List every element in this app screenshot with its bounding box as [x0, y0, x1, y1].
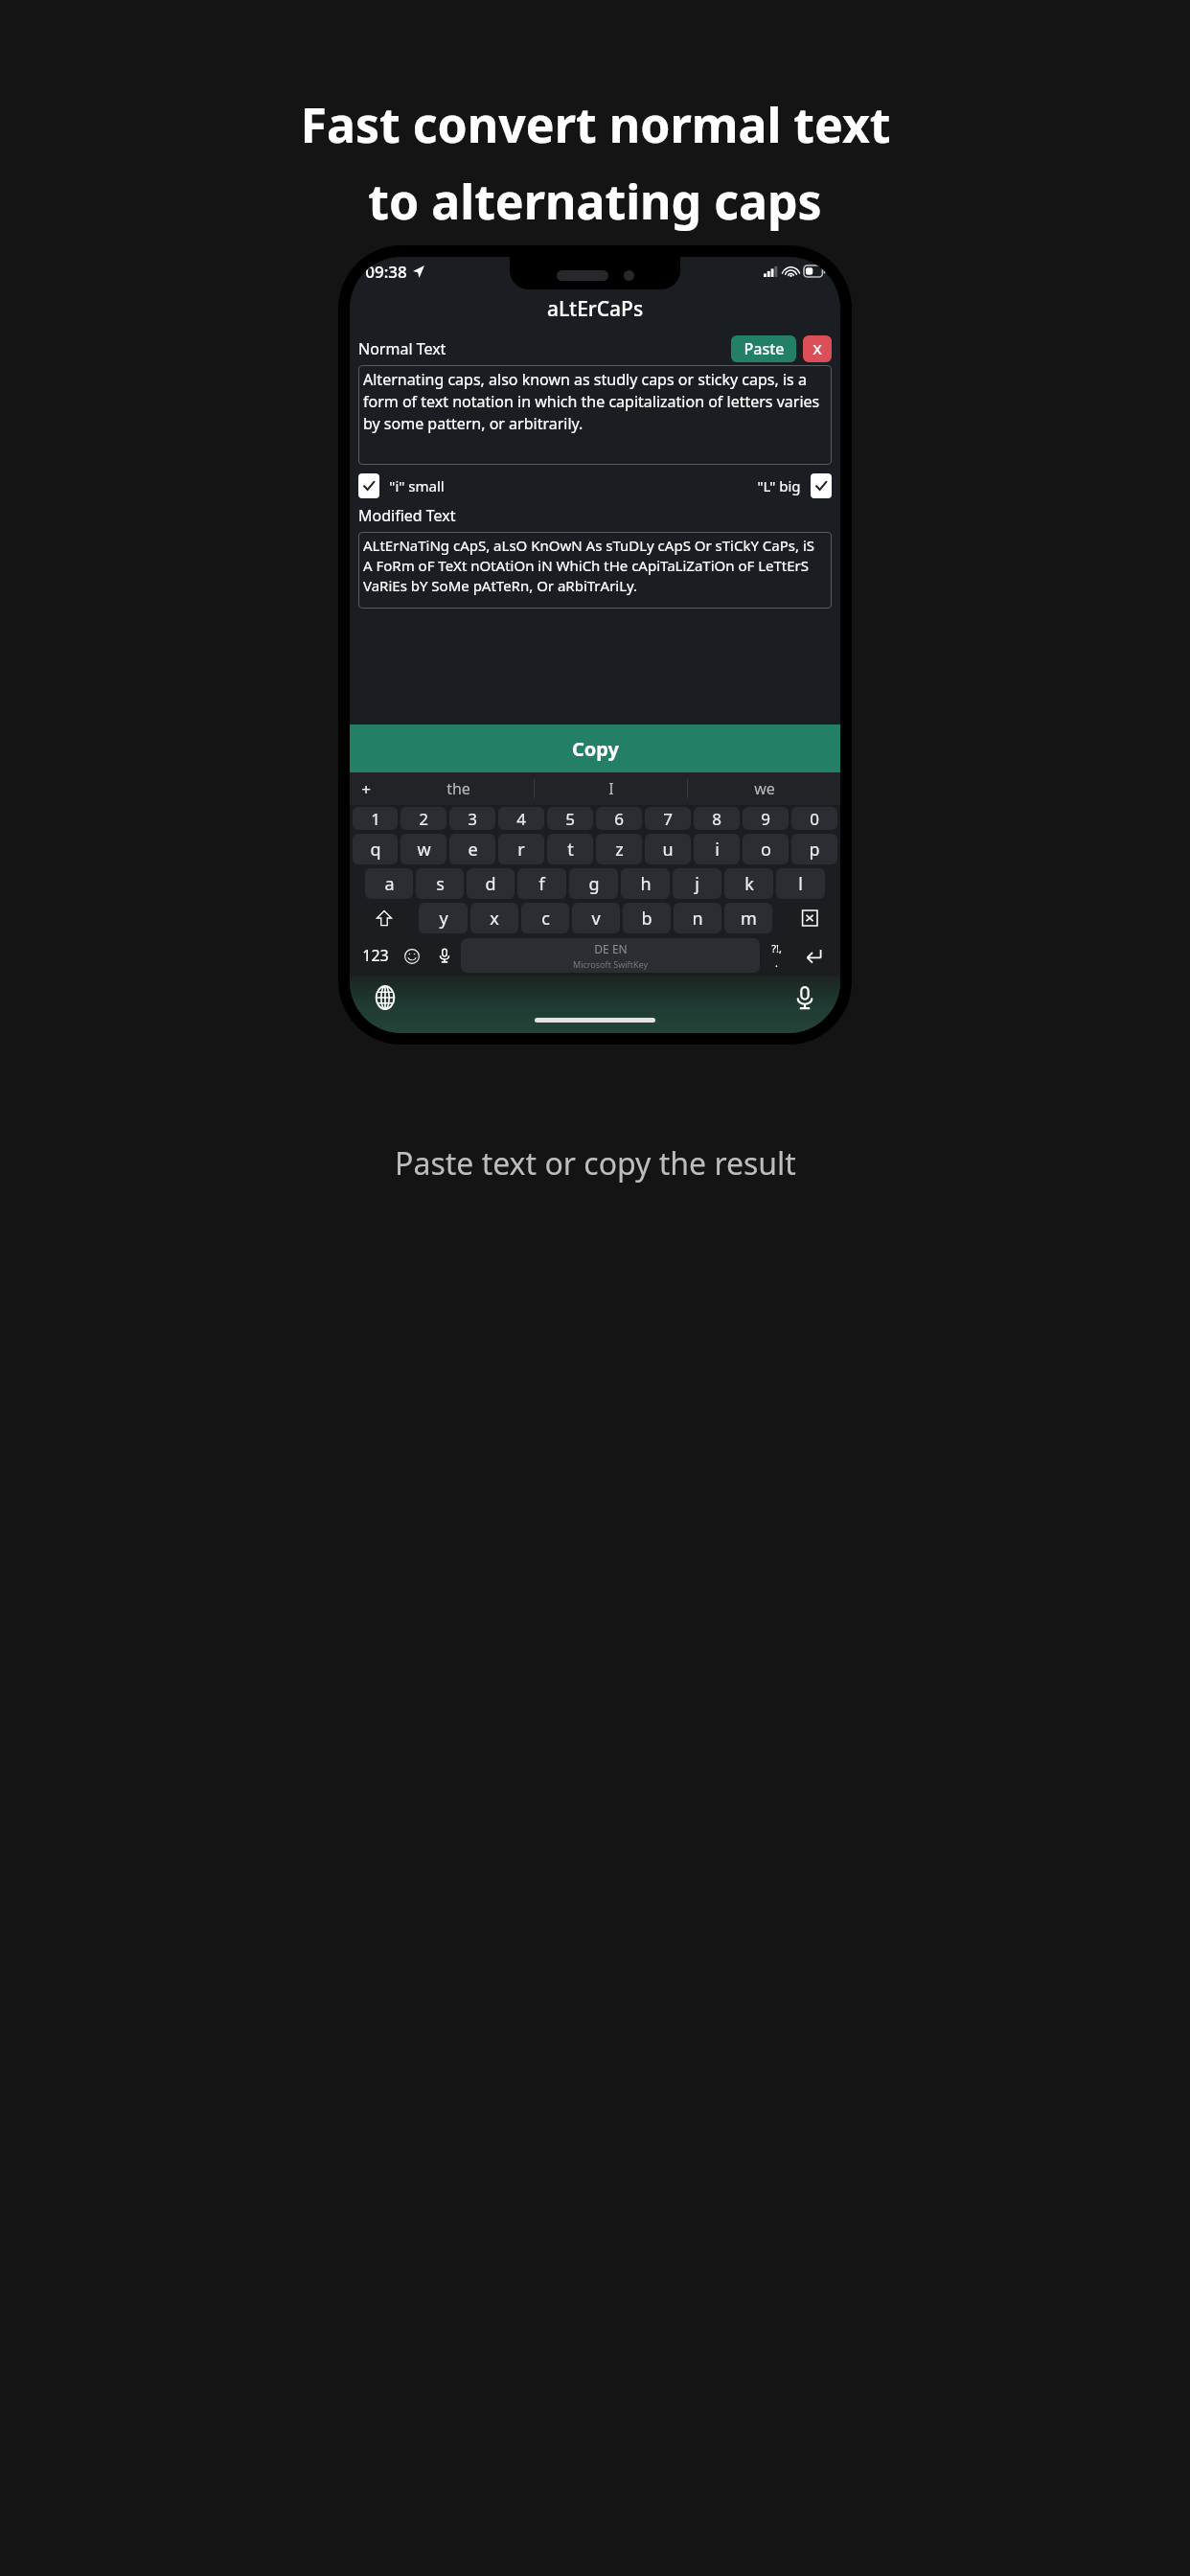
button[interactable]: 123 — [355, 935, 396, 976]
button[interactable]: p — [791, 834, 837, 864]
button[interactable]: v — [572, 903, 620, 933]
staticText: i — [715, 838, 720, 862]
staticText: k — [744, 872, 754, 896]
staticText: Modified Text — [358, 505, 456, 526]
button[interactable]: Add — [350, 772, 382, 805]
button[interactable]: Copy — [350, 724, 840, 772]
button[interactable]: 7 — [645, 807, 691, 830]
button[interactable]: 0 — [791, 807, 837, 830]
staticText: the — [446, 778, 470, 799]
button[interactable]: y — [419, 903, 468, 933]
button[interactable]: s — [416, 868, 464, 899]
staticText: e — [468, 838, 478, 862]
staticText: Copy — [572, 736, 619, 762]
button[interactable]: "i" small — [358, 473, 445, 498]
staticText: 8 — [712, 808, 721, 830]
button[interactable]: 2 — [400, 807, 446, 830]
button[interactable]: "L" big — [757, 473, 832, 498]
staticText: we — [754, 778, 775, 799]
button[interactable]: q — [353, 834, 398, 864]
staticText: I — [608, 778, 614, 799]
button[interactable]: d — [467, 868, 515, 899]
button[interactable]: u — [645, 834, 691, 864]
staticText: u — [662, 838, 674, 862]
button[interactable]: j — [673, 868, 721, 899]
button[interactable]: 1 — [353, 807, 398, 830]
button[interactable]: 9 — [743, 807, 789, 830]
staticText: b — [641, 907, 652, 931]
staticText: 7 — [663, 808, 673, 830]
staticText: DE EN — [594, 941, 628, 956]
staticText: w — [417, 838, 431, 862]
staticText: 6 — [614, 808, 624, 830]
staticText: Microsoft SwiftKey — [573, 958, 648, 970]
button[interactable]: a — [365, 868, 413, 899]
button[interactable]: i — [694, 834, 740, 864]
button[interactable]: f — [517, 868, 566, 899]
staticText: j — [695, 872, 699, 896]
button[interactable]: 3 — [449, 807, 495, 830]
button[interactable]: Shift — [353, 901, 416, 935]
staticText: c — [541, 907, 550, 931]
button[interactable]: I — [535, 772, 687, 805]
staticText: 09:38 — [365, 261, 407, 283]
button[interactable]: Backspace — [775, 901, 837, 935]
button[interactable]: 4 — [498, 807, 544, 830]
button[interactable]: DE EN — [461, 938, 760, 973]
button[interactable]: m — [724, 903, 772, 933]
staticText: q — [370, 838, 381, 862]
button[interactable]: h — [621, 868, 670, 899]
button[interactable]: 8 — [694, 807, 740, 830]
staticText: r — [517, 838, 525, 862]
button[interactable]: n — [674, 903, 721, 933]
staticText: ALtErNaTiNg cApS, aLsO KnOwN As sTuDLy c… — [363, 536, 827, 596]
staticText: 123 — [362, 945, 389, 966]
staticText: + — [361, 778, 371, 800]
staticText: Normal Text — [358, 338, 446, 359]
button[interactable]: o — [743, 834, 789, 864]
button[interactable]: c — [521, 903, 569, 933]
button[interactable]: Clear — [803, 335, 832, 362]
button[interactable]: l — [776, 868, 825, 899]
button[interactable]: k — [724, 868, 773, 899]
button[interactable]: x — [470, 903, 518, 933]
staticText: y — [439, 907, 448, 931]
button[interactable]: we — [688, 772, 840, 805]
button[interactable]: 6 — [596, 807, 642, 830]
button[interactable]: e — [449, 834, 495, 864]
staticText: v — [591, 907, 601, 931]
staticText: to alternating caps — [368, 169, 822, 234]
staticText: z — [615, 838, 624, 862]
button[interactable]: Enter — [792, 935, 835, 976]
staticText: t — [567, 838, 574, 862]
staticText: 0 — [810, 808, 819, 830]
button[interactable]: ?!, — [760, 935, 792, 976]
button[interactable]: Paste — [731, 335, 796, 362]
button[interactable]: Voice — [789, 981, 821, 1014]
staticText: d — [485, 872, 496, 896]
staticText: a — [384, 872, 395, 896]
button[interactable]: w — [400, 834, 446, 864]
button[interactable]: b — [623, 903, 671, 933]
staticText: 9 — [761, 808, 770, 830]
staticText: g — [588, 872, 600, 896]
button[interactable]: z — [596, 834, 642, 864]
staticText: Alternating caps, also known as studly c… — [363, 369, 827, 434]
staticText: 5 — [565, 808, 575, 830]
button[interactable]: r — [498, 834, 544, 864]
button[interactable]: 5 — [547, 807, 593, 830]
staticText: Paste — [744, 338, 785, 359]
button[interactable]: g — [569, 868, 618, 899]
button[interactable]: t — [547, 834, 593, 864]
staticText: Fast convert normal text — [300, 92, 891, 157]
staticText: "i" small — [389, 476, 445, 495]
button[interactable]: Emoji — [396, 935, 428, 976]
staticText: 4 — [516, 808, 526, 830]
staticText: 1 — [371, 808, 380, 830]
staticText: n — [692, 907, 703, 931]
button[interactable]: Voice input — [428, 935, 461, 976]
button[interactable]: Change language — [369, 981, 401, 1014]
staticText: X — [812, 339, 822, 358]
button[interactable]: the — [382, 772, 534, 805]
staticText: 2 — [419, 808, 428, 830]
